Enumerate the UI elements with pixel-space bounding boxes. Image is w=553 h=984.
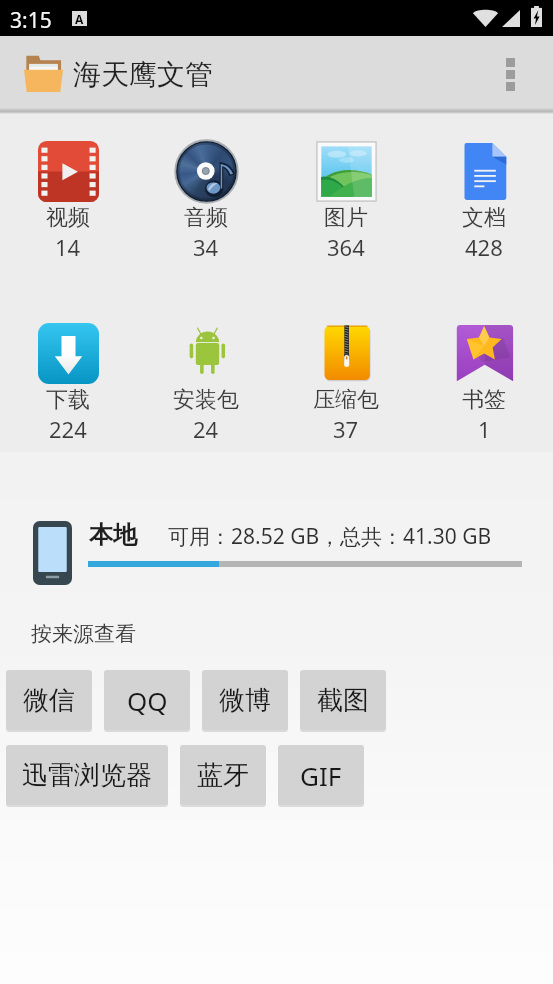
- staticText: 37: [333, 414, 359, 444]
- staticText: 音频: [184, 204, 228, 232]
- button[interactable]: 音频: [137, 133, 275, 262]
- staticText: 224: [49, 414, 87, 444]
- button[interactable]: GIF: [278, 745, 364, 805]
- staticText: 安装包: [173, 386, 239, 414]
- button[interactable]: QQ: [104, 670, 190, 730]
- button[interactable]: 压缩包: [277, 315, 415, 444]
- staticText: QQ: [127, 683, 168, 718]
- staticText: 图片: [324, 204, 368, 232]
- button[interactable]: 视频: [0, 133, 137, 262]
- staticText: 下载: [46, 386, 90, 414]
- staticText: 书签: [462, 386, 506, 414]
- button[interactable]: 截图: [300, 670, 386, 730]
- staticText: 微信: [23, 684, 75, 717]
- staticText: GIF: [300, 758, 342, 793]
- button[interactable]: 本地: [0, 505, 553, 595]
- button[interactable]: 书签: [415, 315, 553, 444]
- button[interactable]: 图片: [277, 133, 415, 262]
- button[interactable]: More options: [488, 48, 543, 103]
- staticText: A: [75, 11, 84, 26]
- button[interactable]: 迅雷浏览器: [6, 745, 168, 805]
- button[interactable]: 下载: [0, 315, 137, 444]
- button[interactable]: 安装包: [137, 315, 275, 444]
- staticText: 文档: [462, 204, 506, 232]
- staticText: 蓝牙: [197, 759, 249, 792]
- staticText: 14: [55, 232, 81, 262]
- button[interactable]: 蓝牙: [180, 745, 266, 805]
- staticText: 迅雷浏览器: [22, 759, 152, 792]
- staticText: 24: [193, 414, 219, 444]
- staticText: 428: [465, 232, 503, 262]
- staticText: 视频: [46, 204, 90, 232]
- staticText: 压缩包: [313, 386, 379, 414]
- staticText: 按来源查看: [31, 621, 136, 647]
- staticText: 可用：28.52 GB，总共：41.30 GB: [168, 522, 492, 551]
- button[interactable]: 微博: [202, 670, 288, 730]
- button[interactable]: 微信: [6, 670, 92, 730]
- staticText: 海天鹰文管: [73, 57, 213, 92]
- staticText: 截图: [317, 684, 369, 717]
- staticText: 1: [478, 414, 491, 444]
- staticText: 微博: [219, 684, 271, 717]
- staticText: 本地: [89, 520, 137, 550]
- staticText: 364: [327, 232, 365, 262]
- staticText: 3:15: [10, 6, 52, 35]
- staticText: 34: [193, 232, 219, 262]
- button[interactable]: 文档: [415, 133, 553, 262]
